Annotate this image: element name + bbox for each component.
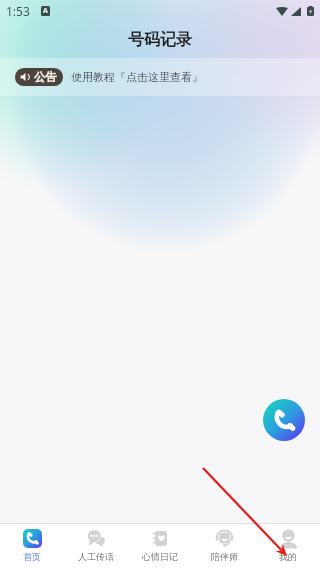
staticText: 我的: [279, 551, 297, 562]
staticText: 公告: [34, 70, 57, 84]
button[interactable]: Call: [263, 399, 305, 441]
button[interactable]: 陪伴师: [192, 530, 256, 562]
button[interactable]: 人工传话: [64, 530, 128, 562]
button[interactable]: 公告: [0, 58, 320, 96]
staticText: 心情日记: [142, 551, 178, 562]
staticText: 号码记录: [128, 30, 192, 50]
button[interactable]: 我的: [256, 530, 320, 562]
button[interactable]: 心情日记: [128, 530, 192, 562]
staticText: 1:53: [6, 3, 30, 19]
staticText: A: [43, 6, 48, 16]
button[interactable]: 首页: [0, 530, 64, 562]
staticText: 首页: [23, 551, 41, 562]
staticText: 使用教程『点击这里查看』: [71, 70, 203, 84]
staticText: 人工传话: [78, 551, 114, 562]
staticText: 陪伴师: [211, 551, 238, 562]
